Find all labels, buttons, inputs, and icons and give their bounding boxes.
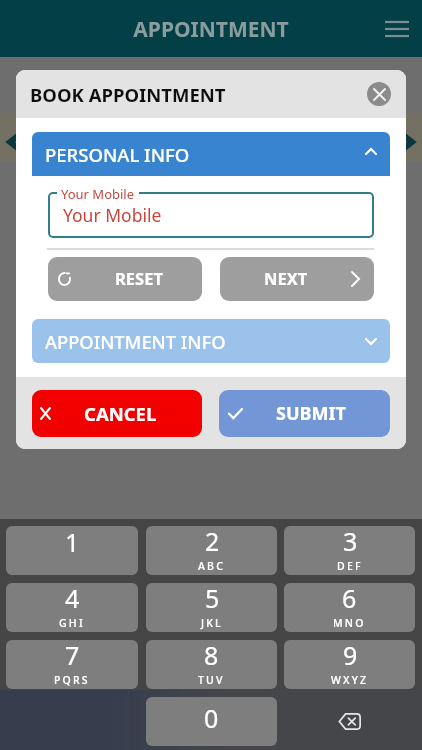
staticText: SUBMIT: [276, 401, 346, 426]
button[interactable]: 4: [6, 583, 138, 632]
staticText: 9: [343, 640, 358, 672]
staticText: Your Mobile: [61, 185, 135, 203]
button[interactable]: 9: [284, 640, 415, 689]
button[interactable]: 2: [146, 526, 277, 575]
button[interactable]: 7: [6, 640, 138, 689]
staticText: PERSONAL INFO: [45, 142, 190, 167]
staticText: TUV: [198, 673, 225, 687]
button[interactable]: 5: [146, 583, 277, 632]
staticText: DEF: [337, 559, 363, 573]
staticText: 4: [65, 583, 80, 615]
staticText: 2: [205, 526, 220, 558]
button[interactable]: 6: [284, 583, 415, 632]
staticText: APPOINTMENT INFO: [45, 329, 226, 354]
button[interactable]: 3: [284, 526, 415, 575]
button[interactable]: APPOINTMENT INFO: [32, 319, 390, 363]
staticText: 5: [205, 583, 220, 615]
staticText: 0: [204, 701, 219, 735]
staticText: PQRS: [54, 673, 90, 687]
staticText: 7: [65, 640, 80, 672]
staticText: 6: [342, 583, 357, 615]
button[interactable]: 1: [6, 526, 138, 575]
staticText: CANCEL: [84, 401, 157, 426]
staticText: Your Mobile: [63, 203, 162, 227]
button[interactable]: Menu: [375, 0, 419, 57]
button[interactable]: NEXT: [220, 257, 374, 301]
staticText: GHI: [59, 616, 85, 630]
staticText: APPOINTMENT: [133, 15, 289, 44]
button[interactable]: PERSONAL INFO: [32, 132, 390, 176]
staticText: WXYZ: [331, 673, 369, 687]
button[interactable]: SUBMIT: [219, 390, 390, 437]
staticText: 3: [343, 526, 358, 558]
staticText: MNO: [333, 616, 366, 630]
staticText: NEXT: [264, 267, 308, 289]
button[interactable]: Your Mobile: [48, 192, 374, 238]
staticText: ABC: [198, 559, 226, 573]
staticText: BOOK APPOINTMENT: [30, 82, 226, 107]
button[interactable]: 8: [146, 640, 277, 689]
button[interactable]: 0: [146, 697, 277, 746]
button[interactable]: Backspace: [284, 697, 415, 746]
staticText: JKL: [201, 616, 223, 630]
staticText: RESET: [115, 267, 163, 289]
button[interactable]: Close: [367, 82, 391, 106]
button[interactable]: RESET: [48, 257, 202, 301]
staticText: 1: [65, 526, 80, 559]
button[interactable]: CANCEL: [32, 390, 202, 437]
staticText: 8: [204, 640, 219, 672]
